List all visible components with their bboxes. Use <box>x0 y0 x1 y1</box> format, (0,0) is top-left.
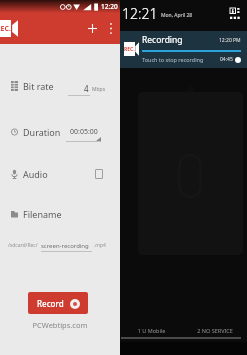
staticText: screen-recording <box>41 242 89 250</box>
button[interactable]: Add <box>84 21 100 35</box>
staticText: .mp4 <box>94 242 106 249</box>
staticText: Audio <box>23 168 48 180</box>
button[interactable]: Screen recorder <box>0 20 18 37</box>
button[interactable]: Filename <box>0 205 120 223</box>
button[interactable]: Bit rate <box>0 77 120 95</box>
staticText: PCWebtips.com <box>0 320 120 330</box>
staticText: REC. <box>0 24 11 34</box>
staticText: REC. <box>124 46 135 53</box>
staticText: Mon, April 28 <box>161 12 193 19</box>
staticText: Mbps <box>92 86 106 93</box>
staticText: 00:05:00 <box>70 127 98 137</box>
staticText: Recording <box>142 34 183 46</box>
staticText: /sdcard/Rec/ <box>8 242 38 249</box>
staticText: 4 <box>84 83 89 94</box>
button[interactable]: Quick settings <box>228 6 242 20</box>
staticText: 12:21 <box>122 4 158 23</box>
staticText: 1 U Mobile <box>120 327 183 334</box>
staticText: 12:20 PM <box>219 37 241 44</box>
button[interactable]: Record <box>28 292 88 314</box>
staticText: Touch to stop recording <box>142 56 204 63</box>
button[interactable]: More options <box>104 21 118 35</box>
button[interactable]: Record audio <box>95 169 103 179</box>
staticText: 04:45 <box>220 56 233 63</box>
staticText: 2 NO SERVICE <box>183 327 247 334</box>
staticText: Record <box>37 298 64 309</box>
button[interactable]: REC. <box>120 31 247 68</box>
staticText: 12:20 <box>101 2 118 11</box>
button[interactable]: Duration <box>0 123 120 141</box>
button[interactable]: Audio <box>0 165 120 183</box>
staticText: Duration <box>23 126 61 138</box>
staticText: Filename <box>23 208 62 220</box>
staticText: Bit rate <box>23 80 54 92</box>
